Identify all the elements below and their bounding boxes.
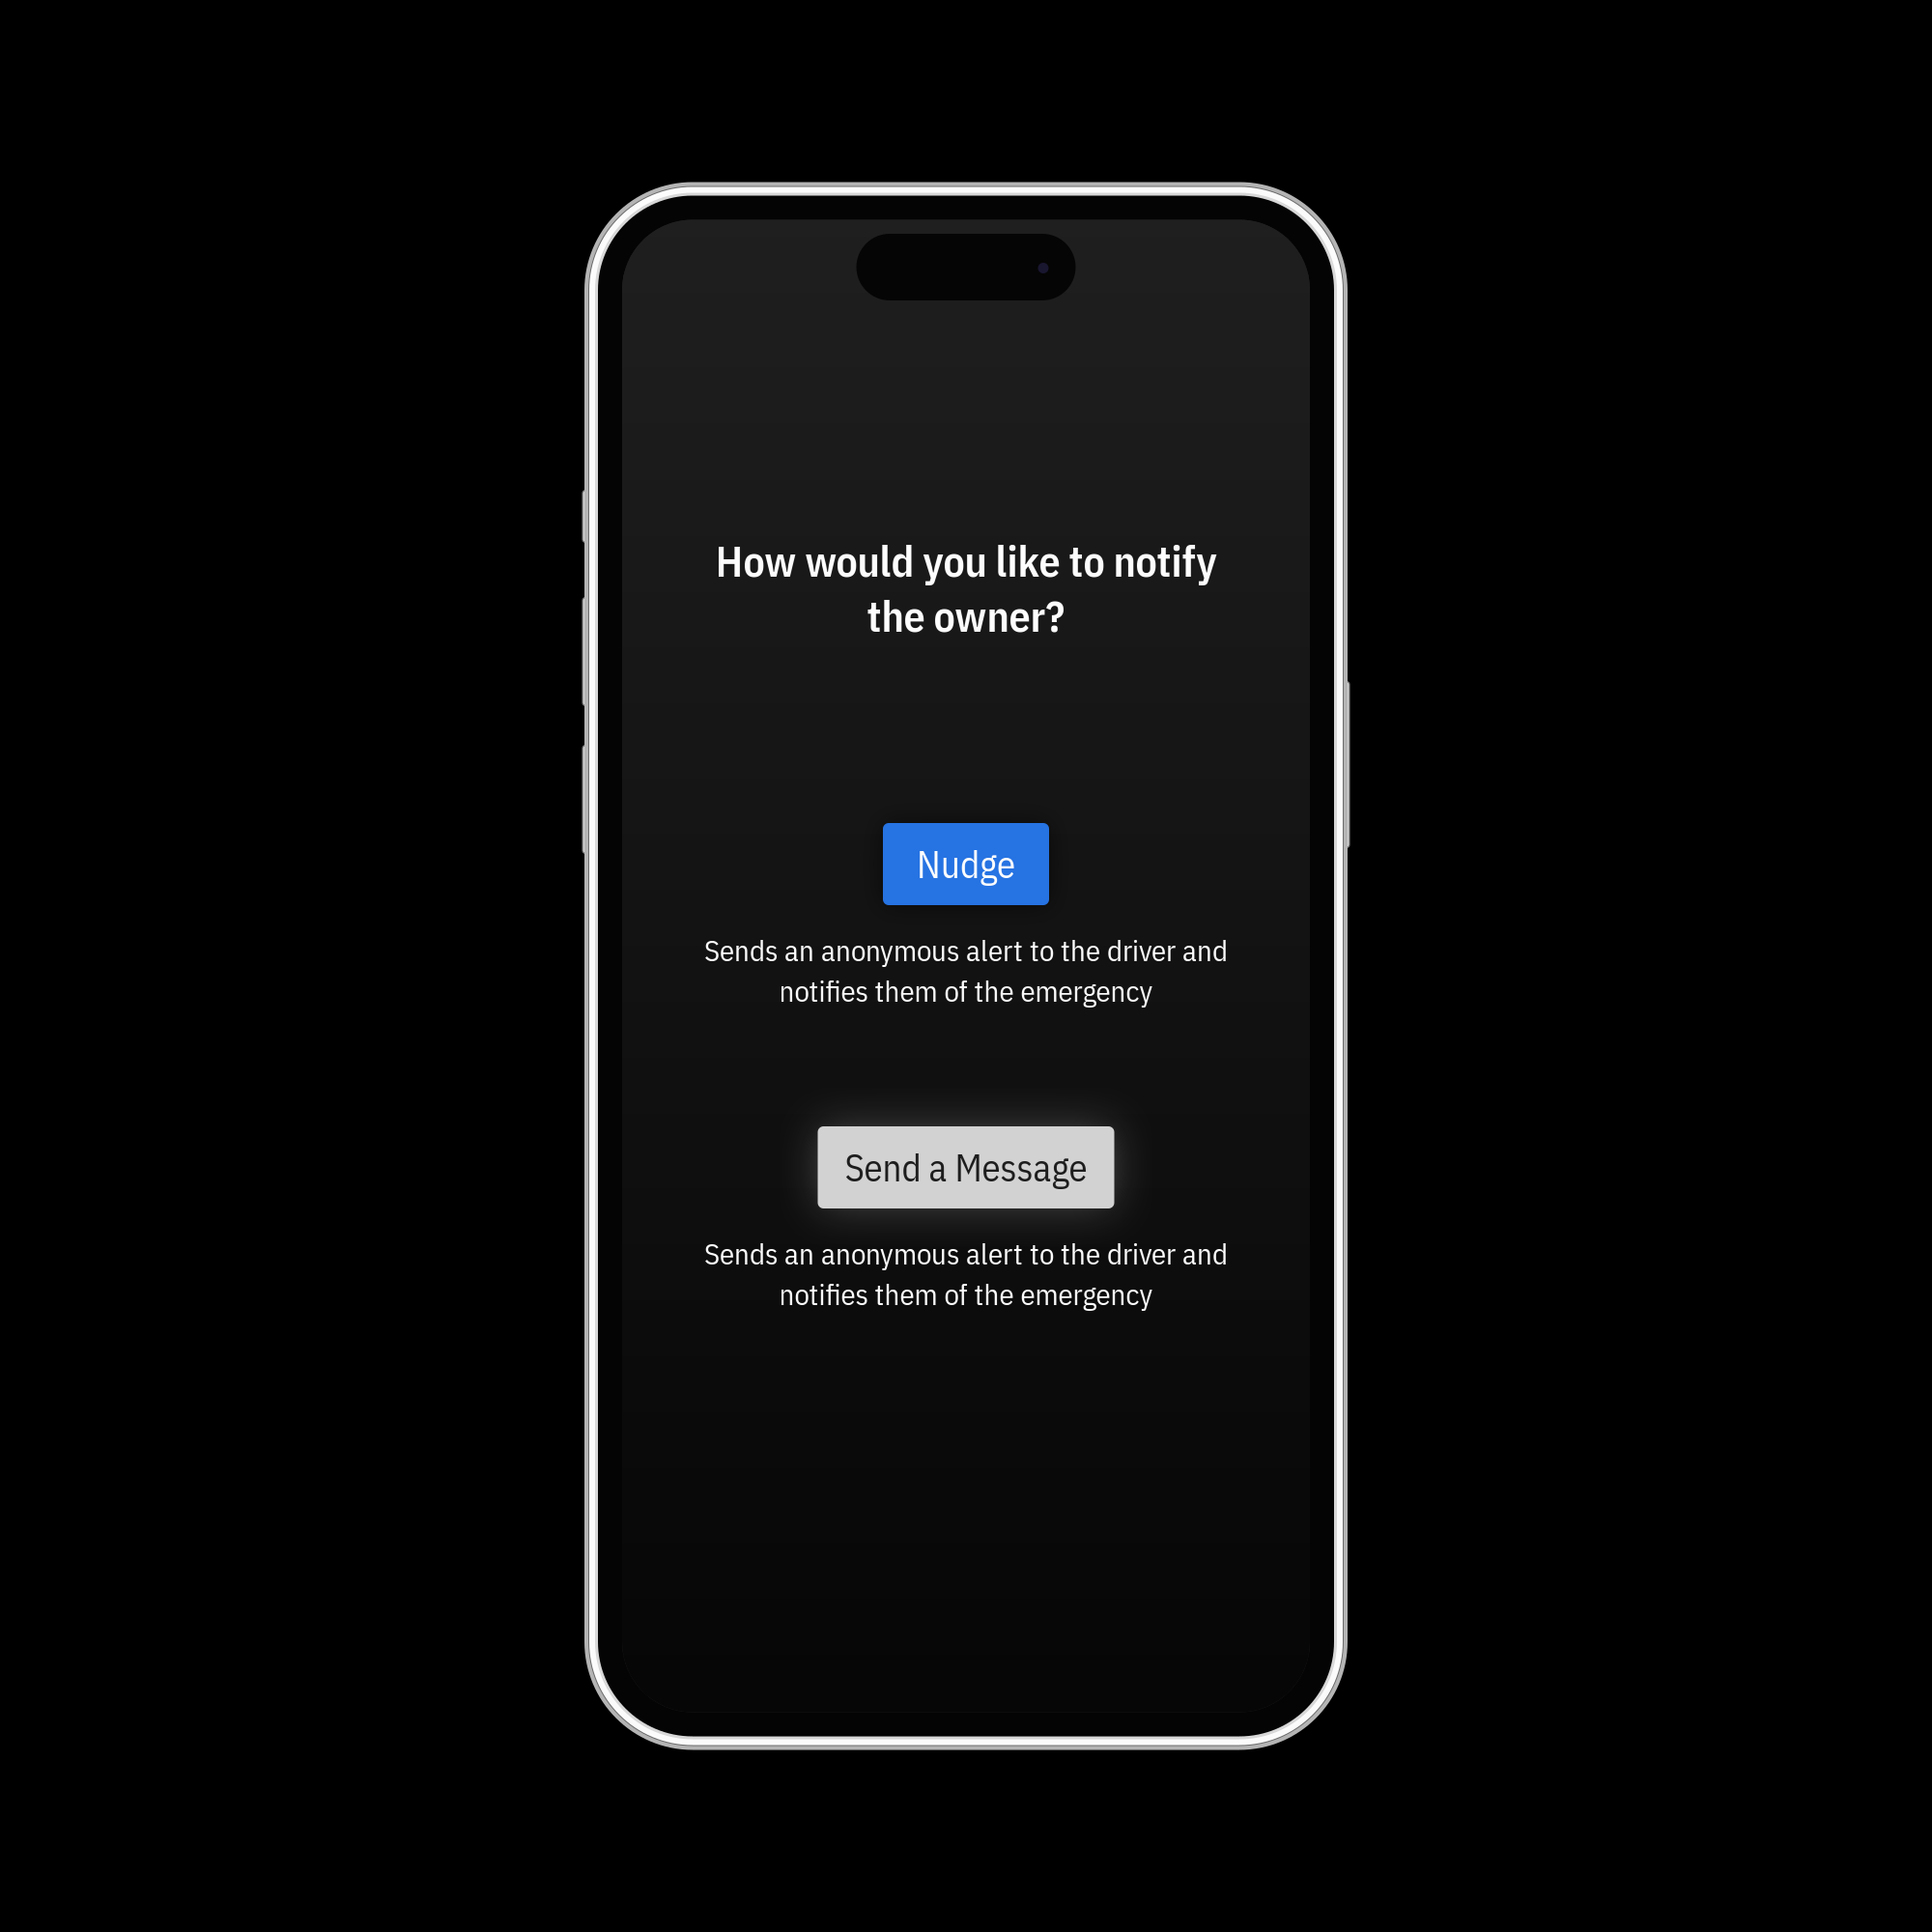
button[interactable]: Send a Message	[818, 1126, 1114, 1208]
staticText: notifies them of the emergency	[779, 971, 1153, 1010]
staticText: the owner?	[867, 588, 1065, 643]
staticText: Nudge	[917, 840, 1015, 888]
staticText: Sends an anonymous alert to the driver a…	[704, 931, 1228, 969]
staticText: Send a Message	[845, 1143, 1087, 1192]
staticText: notifies them of the emergency	[779, 1275, 1153, 1313]
staticText: Sends an anonymous alert to the driver a…	[704, 1234, 1228, 1273]
staticText: How would you like to notify	[715, 533, 1217, 588]
button[interactable]: Nudge	[883, 823, 1049, 905]
